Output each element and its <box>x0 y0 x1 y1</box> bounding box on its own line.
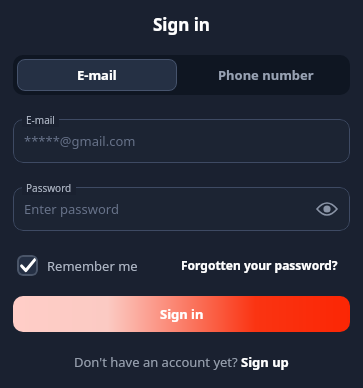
staticText: Sign in <box>160 305 204 323</box>
button[interactable]: Phone number <box>181 55 350 95</box>
staticText: Sign in <box>153 13 210 36</box>
staticText: Phone number <box>218 66 314 84</box>
button[interactable]: Remember me <box>13 255 138 276</box>
staticText: Remember me <box>47 257 138 275</box>
button[interactable]: Sign in <box>13 296 350 332</box>
staticText: E-mail <box>77 66 117 84</box>
staticText: E-mail <box>26 113 55 127</box>
staticText: *****@gmail.com <box>24 132 136 150</box>
button[interactable]: Forgotten your password? <box>181 257 338 273</box>
button[interactable]: *****@gmail.com <box>13 119 350 163</box>
staticText: Enter password <box>24 200 119 218</box>
button[interactable]: Don't have an account yet? Sign up <box>74 353 289 371</box>
button[interactable]: Enter password <box>13 187 350 231</box>
staticText: Password <box>26 181 72 195</box>
button[interactable]: E-mail <box>17 59 177 91</box>
